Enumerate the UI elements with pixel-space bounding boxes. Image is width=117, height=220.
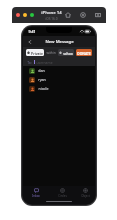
button[interactable]: Zoom xyxy=(30,13,34,17)
button[interactable]: nicole xyxy=(23,84,95,93)
staticText: 9:41 xyxy=(28,29,36,34)
button[interactable]: Back xyxy=(25,37,34,46)
staticText: New Message xyxy=(45,39,74,45)
button[interactable]: Private xyxy=(26,49,44,56)
staticText: iPhone 14 xyxy=(41,10,62,16)
staticText: Inbox xyxy=(32,194,40,198)
button[interactable]: Screenshot xyxy=(94,11,102,19)
button[interactable]: To: xyxy=(23,58,95,66)
staticText: within xyxy=(46,51,56,55)
staticText: school xyxy=(63,51,73,55)
button[interactable]: Close xyxy=(16,13,20,17)
staticText: iOS 16.0 xyxy=(45,17,58,21)
staticText: Private xyxy=(31,51,43,55)
staticText: nicole xyxy=(38,86,49,91)
staticText: DONATE xyxy=(77,51,91,55)
button[interactable]: Home xyxy=(64,11,72,19)
button[interactable]: DONATE xyxy=(76,49,92,56)
staticText: To: xyxy=(27,60,32,65)
button[interactable]: Minimize xyxy=(23,13,27,17)
staticText: Circles xyxy=(58,194,67,198)
staticText: Object xyxy=(81,194,90,198)
button[interactable]: Object xyxy=(75,186,95,199)
button[interactable]: Inbox xyxy=(23,186,49,199)
button[interactable]: dan xyxy=(23,66,95,75)
button[interactable]: Circles xyxy=(49,186,75,199)
staticText: ryan xyxy=(38,77,46,82)
button[interactable]: ryan xyxy=(23,75,95,84)
button[interactable]: Settings xyxy=(79,11,87,19)
staticText: username xyxy=(36,60,53,65)
staticText: dan xyxy=(38,68,45,73)
button[interactable]: school xyxy=(58,49,74,56)
